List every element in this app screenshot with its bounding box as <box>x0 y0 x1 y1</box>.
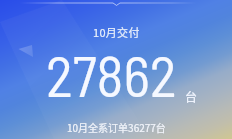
staticText: 10月全系订单36277台 <box>67 120 166 134</box>
staticText: 27862 <box>46 40 177 108</box>
staticText: 10月交付 <box>93 24 140 40</box>
staticText: 台 <box>185 88 198 105</box>
